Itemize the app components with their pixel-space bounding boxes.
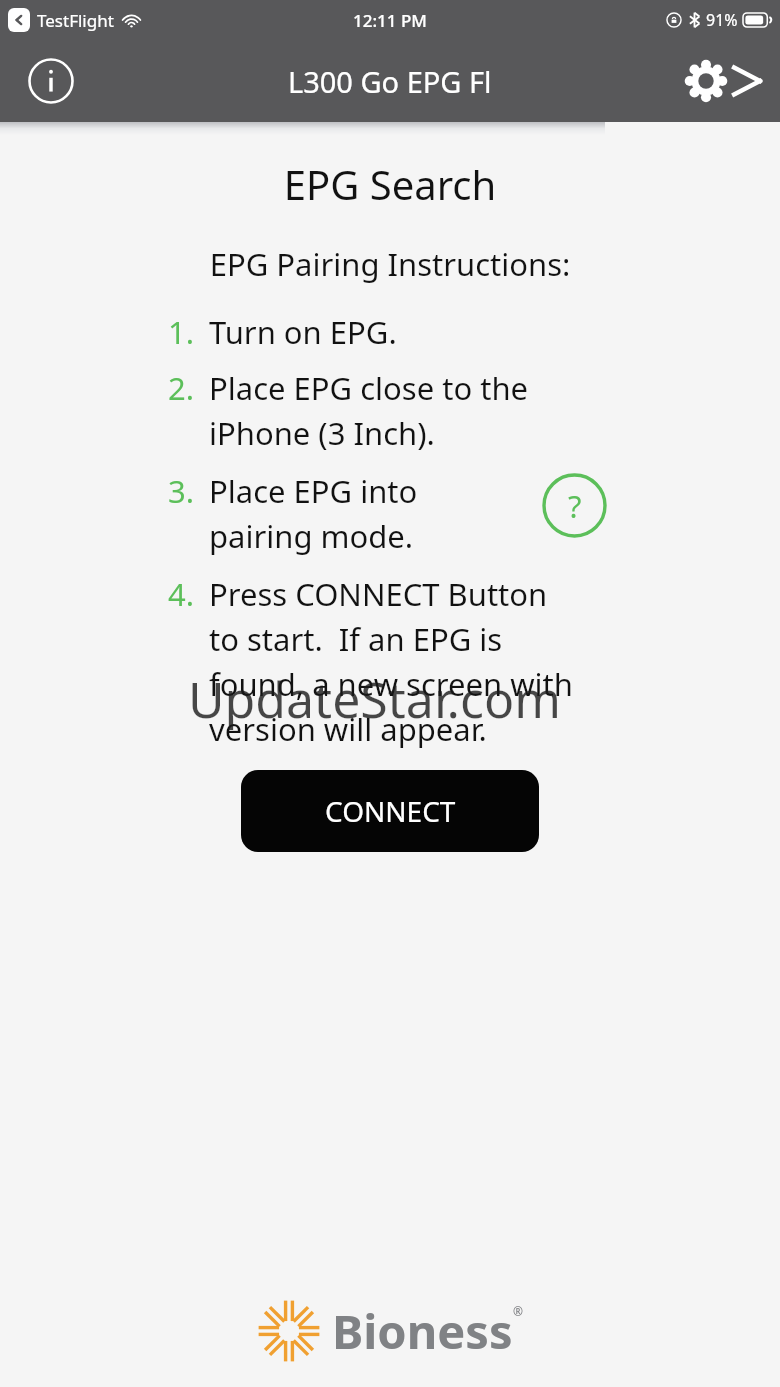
staticText: CONNECT — [325, 792, 456, 830]
staticText: UpdateStar.com — [188, 665, 561, 733]
staticText: 2. — [168, 367, 195, 409]
staticText: 1. — [168, 311, 195, 353]
staticText: Place EPG close to the iPhone (3 Inch). — [209, 367, 529, 454]
staticText: ? — [568, 485, 582, 527]
staticText: EPG Pairing Instructions: — [0, 243, 780, 285]
staticText: Press CONNECT Button to start. If an EPG… — [209, 573, 573, 750]
staticText: TestFlight — [37, 9, 114, 32]
button[interactable]: Help — [542, 473, 607, 538]
staticText: ® — [513, 1303, 523, 1319]
button[interactable]: Settings — [684, 59, 764, 103]
button[interactable]: Information — [28, 58, 74, 104]
button[interactable]: 2. — [168, 367, 764, 454]
button[interactable]: CONNECT — [241, 770, 539, 852]
staticText: Turn on EPG. — [209, 311, 397, 353]
button[interactable]: 3. — [168, 470, 764, 557]
staticText: EPG Search — [0, 157, 780, 211]
button[interactable]: 1. — [168, 311, 764, 353]
staticText: 91% — [706, 9, 738, 31]
staticText: L300 Go EPG Fl — [288, 62, 492, 101]
button[interactable]: 4. — [168, 573, 764, 750]
staticText: 4. — [168, 573, 195, 615]
staticText: Place EPG into pairing mode. — [209, 470, 418, 557]
staticText: 12:11 PM — [353, 9, 427, 32]
staticText: Bioness — [332, 1299, 513, 1363]
staticText: 3. — [168, 470, 195, 512]
